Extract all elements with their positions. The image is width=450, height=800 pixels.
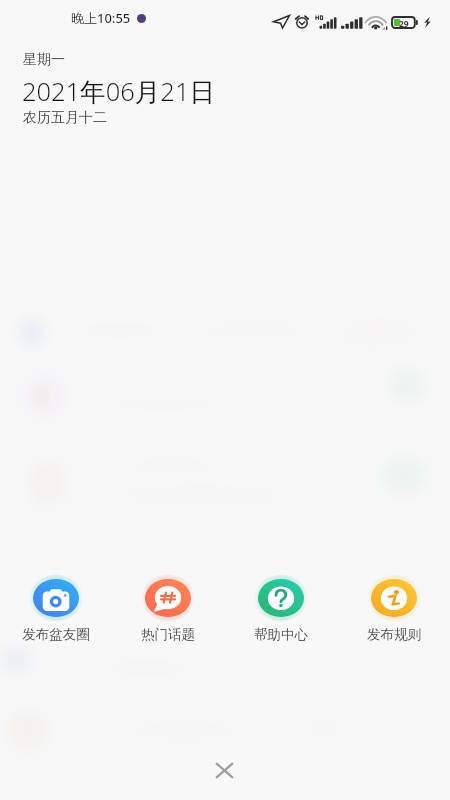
staticText: 热门话题: [141, 626, 195, 643]
staticText: 发布盆友圈: [22, 626, 90, 643]
button[interactable]: 热门话题: [112, 574, 224, 643]
staticText: 晚上10:55: [71, 9, 131, 27]
staticText: 农历五月十二: [23, 109, 107, 127]
staticText: 帮助中心: [254, 626, 308, 643]
staticText: 星期一: [23, 51, 65, 69]
button[interactable]: 发布盆友圈: [0, 574, 112, 643]
button[interactable]: 发布规则: [337, 574, 450, 643]
button[interactable]: 帮助中心: [224, 574, 337, 643]
staticText: 29: [399, 18, 409, 30]
staticText: 发布规则: [367, 626, 421, 643]
staticText: 2021年06月21日: [22, 74, 215, 109]
button[interactable]: 关闭: [201, 747, 247, 793]
